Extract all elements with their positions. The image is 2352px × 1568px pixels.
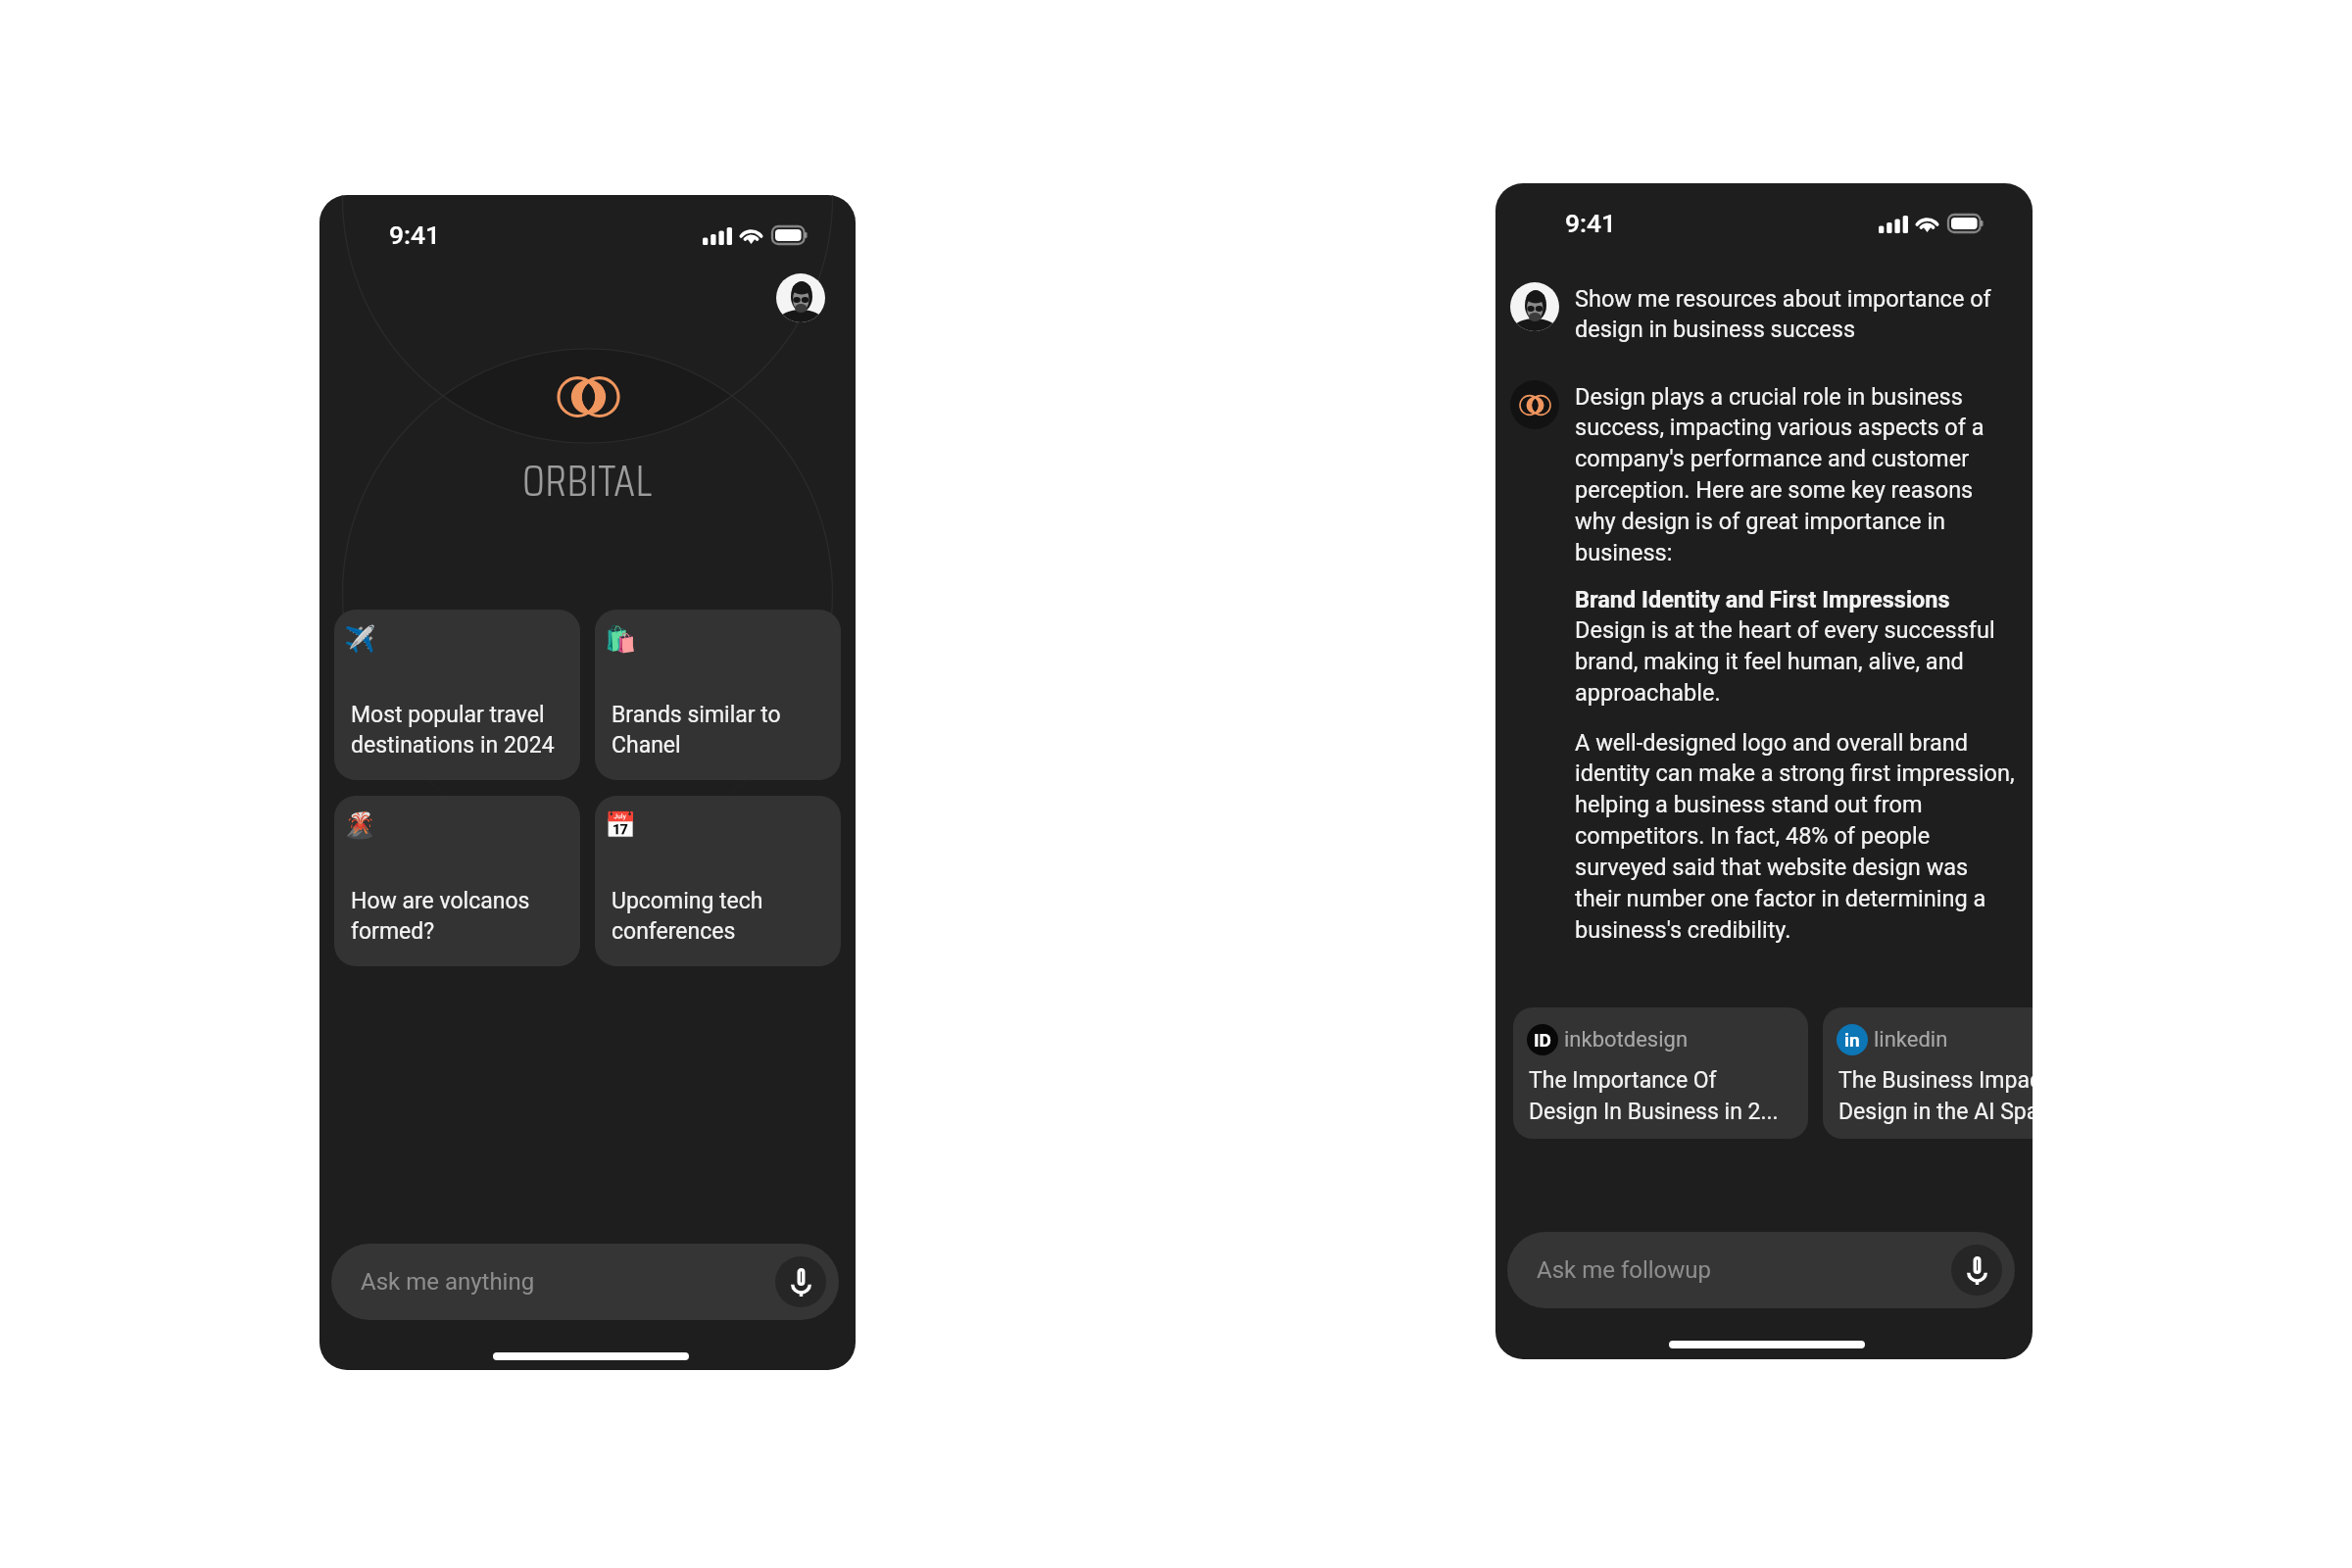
button[interactable]: 🛍️ — [595, 610, 841, 780]
button[interactable]: ✈️ — [334, 610, 580, 780]
staticText: in — [1844, 1029, 1860, 1051]
staticText: Brands similar to Chanel — [612, 702, 822, 758]
staticText: ORBITAL — [522, 447, 653, 514]
staticText: How are volcanos formed? — [351, 888, 562, 944]
staticText: A well-designed logo and overall brand i… — [1575, 729, 2016, 944]
staticText: The Importance Of Design In Business in … — [1529, 1067, 1780, 1125]
staticText: ✈️ — [344, 624, 376, 654]
staticText: 🌋 — [344, 810, 376, 840]
button[interactable]: Voice input — [775, 1256, 826, 1307]
staticText: Ask me anything — [361, 1268, 535, 1296]
button[interactable]: ID — [1513, 1007, 1808, 1139]
staticText: linkedin — [1874, 1027, 1948, 1053]
button[interactable]: Profile — [776, 273, 825, 322]
button[interactable]: 🌋 — [334, 796, 580, 966]
staticText: 📅 — [605, 810, 637, 840]
staticText: ID — [1534, 1029, 1551, 1051]
button[interactable]: Voice input — [1951, 1245, 2002, 1296]
staticText: Brand Identity and First Impressions Des… — [1575, 586, 2016, 707]
staticText: The Business Impact of Design in the AI … — [1838, 1067, 2033, 1125]
button[interactable]: in — [1823, 1007, 2033, 1139]
button[interactable]: Ask me followup — [1507, 1232, 2015, 1308]
staticText: 9:41 — [1565, 208, 1617, 238]
button[interactable]: 📅 — [595, 796, 841, 966]
staticText: Show me resources about importance of de… — [1575, 285, 2016, 343]
staticText: inkbotdesign — [1564, 1027, 1689, 1053]
staticText: 9:41 — [389, 220, 441, 250]
button[interactable]: Profile — [1510, 282, 1559, 331]
staticText: Ask me followup — [1537, 1256, 1712, 1284]
staticText: Upcoming tech conferences — [612, 888, 822, 944]
staticText: Design plays a crucial role in business … — [1575, 383, 2016, 566]
staticText: 🛍️ — [605, 624, 637, 654]
button[interactable]: Ask me anything — [331, 1244, 839, 1320]
staticText: Most popular travel destinations in 2024 — [351, 702, 562, 758]
